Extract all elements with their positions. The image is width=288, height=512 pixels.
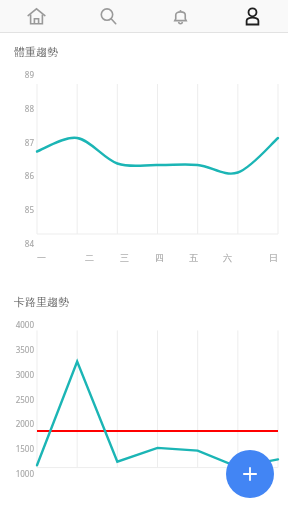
staticText: 一 [37,252,46,263]
staticText: 87 [24,137,34,148]
button[interactable]: Notifications [144,0,216,32]
staticText: 86 [24,170,34,181]
staticText: 二 [85,252,94,263]
button[interactable]: Add record [226,450,274,498]
staticText: 88 [24,103,34,114]
staticText: 89 [24,69,34,80]
staticText: 2500 [15,394,34,405]
button[interactable]: Search [72,0,144,32]
button[interactable]: Home [0,0,72,32]
staticText: 1000 [15,468,34,479]
staticText: 4000 [15,319,34,330]
staticText: 3000 [15,369,34,380]
staticText: 四 [155,252,164,263]
staticText: 三 [120,252,129,263]
staticText: 卡路里趨勢 [14,295,69,309]
staticText: 體重趨勢 [14,45,58,59]
staticText: 2000 [15,418,34,429]
button[interactable]: Profile [216,0,288,32]
staticText: 六 [223,252,232,263]
staticText: 84 [24,238,34,249]
staticText: 日 [269,252,278,263]
staticText: 85 [24,204,34,215]
staticText: 1500 [15,443,34,454]
staticText: 3500 [15,344,34,355]
staticText: 五 [189,252,198,263]
